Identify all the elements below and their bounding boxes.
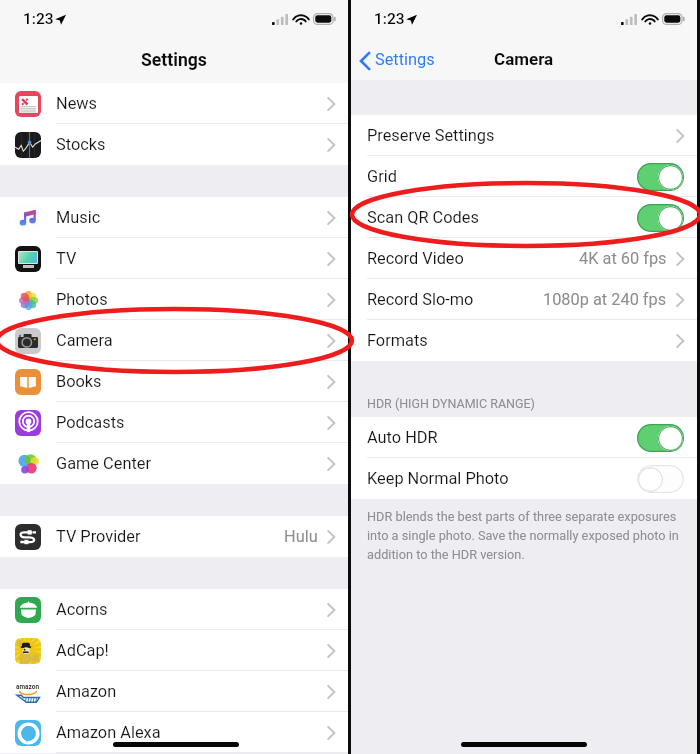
button[interactable]: Scan QR Codes [351, 197, 697, 238]
staticText: HDR (HIGH DYNAMIC RANGE) [367, 396, 535, 411]
staticText: Books [56, 372, 102, 391]
staticText: Amazon [56, 682, 117, 701]
staticText: Grid [367, 167, 397, 186]
staticText: Formats [367, 331, 428, 350]
staticText: amazon [16, 683, 40, 691]
button[interactable]: Photos [0, 279, 348, 320]
button[interactable]: Music [0, 197, 348, 238]
staticText: News [56, 94, 98, 113]
button[interactable]: Toggle on [637, 204, 684, 232]
staticText: Hulu [284, 527, 318, 546]
button[interactable]: Keep Normal Photo [351, 458, 697, 499]
staticText: Music [56, 208, 101, 227]
button[interactable]: TV Provider [0, 516, 348, 557]
staticText: Game Center [56, 454, 151, 473]
staticText: Settings [375, 50, 435, 69]
button[interactable]: Game Center [0, 443, 348, 484]
button[interactable]: Grid [351, 156, 697, 197]
staticText: Podcasts [56, 413, 125, 432]
button[interactable]: Toggle on [637, 424, 684, 452]
button[interactable]: Acorns [0, 589, 348, 630]
staticText: TV Provider [56, 527, 141, 546]
staticText: AdCap! [56, 641, 109, 660]
button[interactable]: Toggle on [637, 163, 684, 191]
button[interactable]: Amazon Alexa [0, 712, 348, 753]
button[interactable]: Toggle off [637, 465, 684, 493]
staticText: Camera [56, 331, 113, 350]
button[interactable]: Record Video [351, 238, 697, 279]
staticText: Photos [56, 290, 108, 309]
staticText: Camera [494, 49, 554, 69]
staticText: Scan QR Codes [367, 208, 479, 227]
button[interactable]: Formats [351, 320, 697, 361]
staticText: 1:23 [374, 10, 405, 28]
staticText: Record Slo-mo [367, 290, 474, 309]
button[interactable]: AdCap! [0, 630, 348, 671]
button[interactable]: Auto HDR [351, 417, 697, 458]
button[interactable]: Camera [0, 320, 348, 361]
staticText: Stocks [56, 135, 106, 154]
button[interactable]: Books [0, 361, 348, 402]
staticText: Keep Normal Photo [367, 469, 509, 488]
staticText: Record Video [367, 249, 464, 268]
staticText: Amazon Alexa [56, 723, 161, 742]
button[interactable]: Stocks [0, 124, 348, 165]
staticText: HDR blends the best parts of three separ… [367, 509, 691, 562]
staticText: Preserve Settings [367, 126, 495, 145]
staticText: Auto HDR [367, 428, 438, 447]
button[interactable]: Preserve Settings [351, 115, 697, 156]
button[interactable]: Settings [360, 47, 441, 74]
staticText: TV [56, 249, 77, 268]
button[interactable]: News [0, 83, 348, 124]
staticText: Settings [141, 50, 207, 71]
staticText: 1:23 [23, 10, 54, 28]
staticText: 1080p at 240 fps [543, 290, 667, 309]
staticText: 4K at 60 fps [579, 249, 667, 268]
button[interactable]: Record Slo-mo [351, 279, 697, 320]
staticText: Acorns [56, 600, 108, 619]
button[interactable]: Podcasts [0, 402, 348, 443]
button[interactable]: amazon [0, 671, 348, 712]
button[interactable]: TV [0, 238, 348, 279]
